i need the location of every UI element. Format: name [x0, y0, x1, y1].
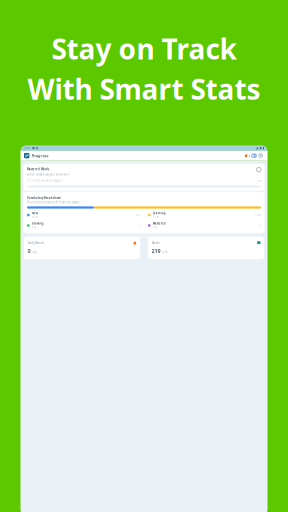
- staticText: Mastered Words: [27, 167, 49, 171]
- button[interactable]: Daily Streak: [24, 237, 140, 259]
- staticText: 156: [255, 213, 261, 217]
- staticText: 0: [248, 154, 250, 157]
- button[interactable]: Learning: [148, 212, 261, 219]
- staticText: Mastered: [153, 222, 166, 225]
- button[interactable]: Words: [148, 237, 264, 259]
- staticText: Daily Streak: [27, 241, 44, 245]
- button[interactable]: Mastered Words: [23, 164, 264, 191]
- button[interactable]: Settings: [257, 153, 264, 159]
- staticText: 0%: [257, 179, 261, 182]
- staticText: 0: [259, 224, 261, 227]
- staticText: 9:41: [24, 146, 31, 150]
- staticText: Stay on Track: [51, 30, 236, 67]
- staticText: New: [32, 211, 38, 215]
- staticText: Progress: [32, 153, 49, 158]
- staticText: Your progress across all learning stages: [27, 200, 80, 204]
- staticText: Vocabulary Breakdown: [27, 196, 61, 200]
- staticText: days: [32, 250, 37, 254]
- button[interactable]: Mastered: [148, 222, 261, 229]
- staticText: 63: [136, 213, 140, 217]
- staticText: 29%: [32, 215, 38, 219]
- button[interactable]: New: [27, 212, 140, 219]
- staticText: Growing: [32, 222, 44, 225]
- button[interactable]: Streak: [244, 153, 250, 159]
- staticText: With Smart Stats: [27, 70, 260, 107]
- staticText: 0: [27, 247, 30, 254]
- button[interactable]: Decks: [250, 153, 257, 159]
- staticText: 0: [138, 224, 140, 227]
- staticText: 0 / 1190 words to target: [27, 179, 62, 182]
- staticText: 219: [151, 247, 160, 254]
- button[interactable]: Progress: [24, 153, 49, 158]
- staticText: Words: [151, 241, 159, 245]
- staticText: 71%: [153, 215, 159, 219]
- staticText: total: [162, 250, 168, 254]
- staticText: Learning: [153, 211, 166, 215]
- staticText: Active vocabulary you know well: [27, 173, 70, 176]
- button[interactable]: Growing: [27, 222, 140, 229]
- staticText: 0%: [32, 226, 36, 229]
- staticText: 0%: [153, 226, 157, 229]
